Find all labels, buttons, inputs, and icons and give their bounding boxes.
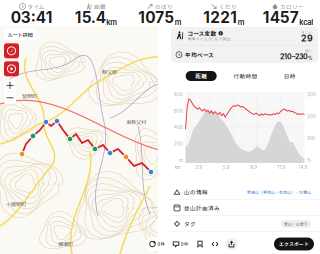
staticText: 0件 [157, 241, 165, 247]
button[interactable]: 0件 [145, 240, 169, 247]
button[interactable]: 山の情報 [169, 184, 316, 200]
staticText: 8.9 [250, 165, 257, 170]
staticText: m [238, 18, 245, 27]
staticText: 300 [307, 92, 316, 97]
staticText: 200 [174, 141, 183, 147]
button[interactable]: Share [222, 238, 240, 250]
button[interactable]: Embed [207, 240, 222, 247]
staticText: % [307, 158, 311, 163]
staticText: 秩父郡 [102, 68, 117, 76]
staticText: カロリー [280, 2, 304, 10]
staticText: タイム [27, 2, 44, 10]
button[interactable]: 登山計画済み [169, 200, 316, 216]
staticText: コース定数 [187, 29, 216, 37]
button[interactable]: Play route [4, 61, 19, 76]
staticText: 筑波山（男体山・女体山）・大鷹山 [247, 189, 311, 195]
staticText: 14.9 [298, 165, 307, 170]
staticText: m [179, 158, 183, 163]
staticText: 横瀬町 [58, 240, 73, 248]
staticText: 速い [305, 48, 313, 53]
staticText: 1457 [263, 8, 299, 27]
staticText: 210–230 [280, 52, 308, 61]
button[interactable]: 行動時間 [233, 71, 257, 81]
staticText: ルート詳細 [7, 31, 32, 38]
staticText: きつい [301, 30, 313, 35]
staticText: 1221 [203, 8, 237, 27]
button[interactable]: Compass [4, 43, 19, 58]
staticText: 400 [174, 125, 183, 130]
staticText: 200 [307, 114, 316, 119]
button[interactable]: 0件 [169, 240, 192, 247]
button[interactable]: ルート詳細 [4, 29, 36, 40]
staticText: 標準タイム 07:36 で算出 [187, 36, 230, 42]
staticText: 距離 [94, 2, 106, 10]
staticText: 登山・山登り [284, 221, 308, 227]
button[interactable]: 距離 [186, 71, 217, 81]
button[interactable]: Zoom out [4, 92, 16, 104]
staticText: 0件 [181, 241, 189, 247]
staticText: 距離 [195, 72, 207, 80]
staticText: タグ [184, 220, 196, 228]
staticText: くだり [219, 2, 237, 10]
staticText: 登山計画済み [184, 204, 220, 212]
staticText: 平均ペース [185, 51, 214, 59]
staticText: エクスポート [279, 240, 309, 247]
staticText: 皆野町 [22, 92, 37, 100]
staticText: 2.9 [195, 165, 202, 170]
staticText: 5.9 [223, 165, 230, 170]
staticText: m [175, 18, 182, 27]
staticText: のぼり [155, 2, 173, 10]
staticText: 800 [174, 92, 183, 97]
staticText: 小鹿野町 [6, 200, 26, 208]
staticText: kcal [299, 18, 313, 27]
staticText: 11.9 [277, 165, 285, 170]
button[interactable]: エクスポート [274, 237, 314, 250]
button[interactable]: Zoom in [4, 79, 16, 91]
staticText: 100 [307, 136, 315, 141]
staticText: 15.4 [75, 8, 106, 27]
staticText: 行動時間 [233, 72, 257, 80]
staticText: % [308, 55, 313, 61]
staticText: 山の情報 [184, 188, 208, 196]
button[interactable]: Bookmark [192, 240, 207, 247]
button[interactable]: 日時 [284, 71, 296, 81]
staticText: 1075 [138, 8, 174, 27]
staticText: 29 [301, 33, 313, 44]
staticText: 03:41 [11, 8, 53, 27]
staticText: 東秩父村 [126, 118, 146, 126]
staticText: km [106, 18, 117, 27]
staticText: 日時 [284, 72, 296, 80]
staticText: km [174, 165, 180, 170]
button[interactable]: タグ [169, 216, 316, 232]
staticText: 600 [174, 108, 183, 114]
